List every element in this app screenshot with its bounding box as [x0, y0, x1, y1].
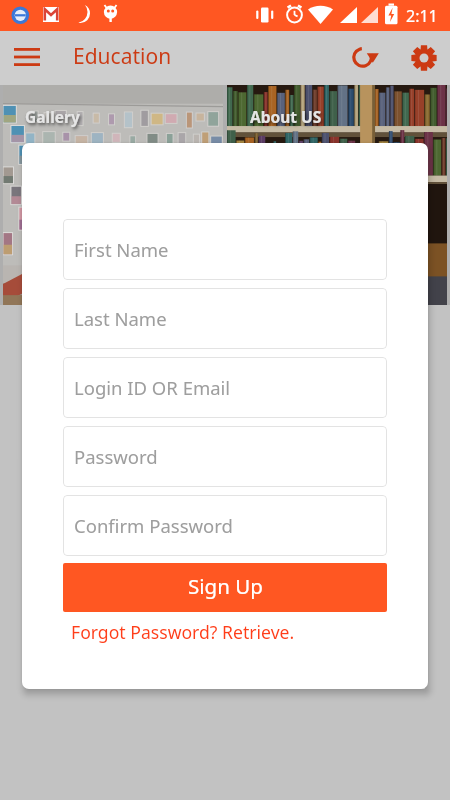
staticText: Gallery	[25, 106, 80, 127]
staticText: 2:11	[406, 5, 438, 27]
staticText: Education	[73, 42, 172, 71]
staticText: Confirm Password	[74, 513, 233, 538]
button[interactable]: Last Name	[63, 288, 387, 349]
button[interactable]: Password	[63, 426, 387, 487]
button[interactable]: Gallery	[3, 85, 223, 305]
staticText: About US	[250, 106, 322, 127]
staticText: First Name	[74, 237, 169, 262]
button[interactable]: Open navigation menu	[0, 31, 52, 85]
button[interactable]: Sign Up	[63, 563, 387, 612]
button[interactable]: Refresh	[345, 31, 385, 85]
button[interactable]: Confirm Password	[63, 495, 387, 556]
button[interactable]: Login ID OR Email	[63, 357, 387, 418]
button[interactable]: Forgot Password? Retrieve.	[71, 620, 295, 644]
button[interactable]: Settings	[405, 31, 450, 85]
staticText: Login ID OR Email	[74, 375, 231, 400]
staticText: Password	[74, 444, 158, 469]
staticText: Sign Up	[188, 572, 263, 600]
button[interactable]: About US	[227, 85, 447, 305]
button[interactable]: First Name	[63, 219, 387, 280]
staticText: Last Name	[74, 306, 167, 331]
